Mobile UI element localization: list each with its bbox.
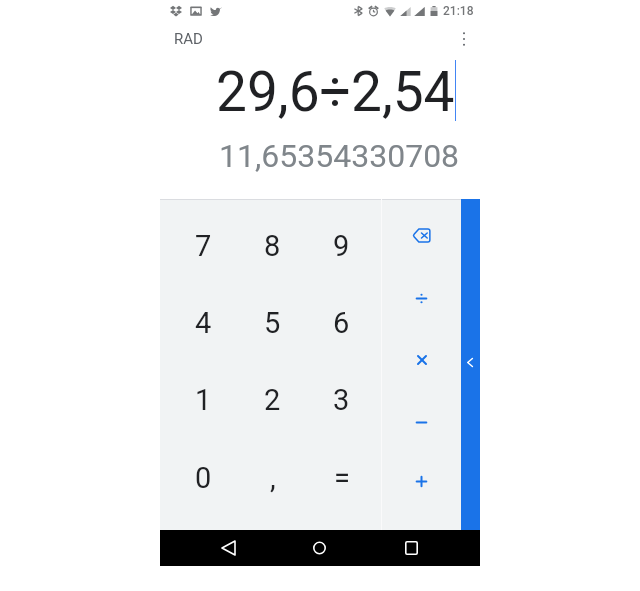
button[interactable]: Subtract (382, 391, 461, 453)
button[interactable]: Recent apps (391, 530, 431, 566)
button[interactable]: 5 (238, 284, 307, 361)
button[interactable]: , (238, 439, 307, 517)
button[interactable]: = (307, 439, 376, 517)
staticText: 0 (195, 461, 212, 495)
button[interactable]: More options (447, 22, 480, 55)
staticText: 9 (333, 229, 350, 263)
button[interactable]: 3 (307, 361, 376, 439)
staticText: = (334, 461, 350, 495)
staticText: 6 (333, 306, 350, 340)
staticText: 2 (264, 383, 281, 417)
button[interactable]: 0 (169, 439, 238, 517)
staticText: 3 (333, 383, 350, 417)
button[interactable]: 7 (169, 207, 238, 284)
button[interactable]: 1 (169, 361, 238, 439)
staticText: 29,6÷2,54 (216, 60, 455, 124)
button[interactable]: Home (299, 530, 339, 566)
staticText: 21:18 (443, 4, 474, 18)
staticText: 7 (195, 229, 212, 263)
staticText: , (270, 461, 276, 495)
staticText: 5 (264, 306, 281, 340)
staticText: 4 (195, 306, 212, 340)
button[interactable]: Delete (382, 204, 461, 266)
button[interactable]: 2 (238, 361, 307, 439)
button[interactable]: Add (382, 450, 461, 512)
staticText: 1 (195, 383, 212, 417)
staticText: 11,65354330708 (219, 137, 460, 175)
button[interactable]: 4 (169, 284, 238, 361)
staticText: 8 (264, 229, 281, 263)
button[interactable]: Multiply (382, 329, 461, 391)
staticText: RAD (174, 30, 203, 48)
button[interactable]: 6 (307, 284, 376, 361)
button[interactable]: 9 (307, 207, 376, 284)
button[interactable]: Back (208, 530, 248, 566)
button[interactable]: 8 (238, 207, 307, 284)
button[interactable]: Expand advanced pad (461, 199, 480, 530)
button[interactable]: Divide (382, 267, 461, 329)
